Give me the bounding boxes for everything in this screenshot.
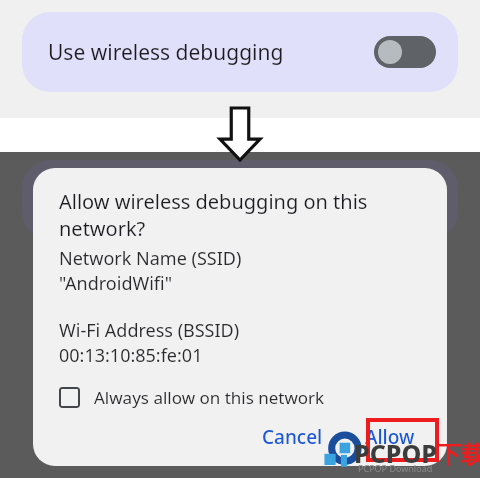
- staticText: Always allow on this network: [94, 386, 325, 409]
- staticText: Allow wireless debugging on this network…: [59, 188, 368, 242]
- staticText: PCPOP: [354, 436, 437, 470]
- staticText: Use wireless debugging: [48, 38, 284, 67]
- staticText: Allow: [365, 424, 415, 450]
- button[interactable]: Always allow on this network: [59, 384, 325, 411]
- button[interactable]: Use wireless debugging: [22, 12, 458, 92]
- staticText: "AndroidWifi": [59, 271, 173, 296]
- button[interactable]: Allow: [355, 416, 425, 458]
- button[interactable]: Cancel: [252, 416, 333, 458]
- staticText: Network Name (SSID): [59, 246, 242, 271]
- staticText: Cancel: [262, 424, 323, 450]
- staticText: Wi-Fi Address (BSSID): [59, 318, 240, 343]
- button[interactable]: Use wireless debugging toggle: [374, 36, 436, 68]
- staticText: PCPOP Download: [358, 462, 433, 474]
- staticText: 下载: [437, 440, 480, 470]
- staticText: 00:13:10:85:fe:01: [59, 343, 203, 368]
